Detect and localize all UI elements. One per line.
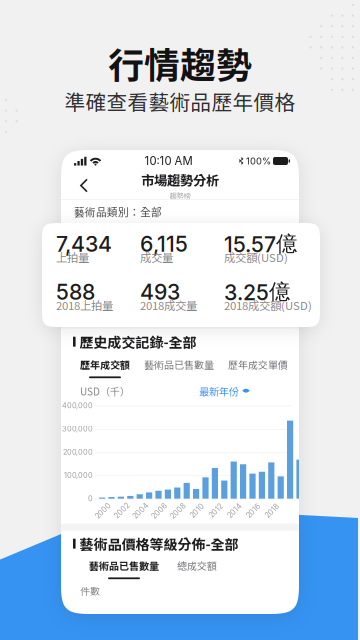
staticText: 上拍量 (56, 249, 89, 265)
staticText: 400,000 (62, 401, 93, 410)
staticText: 2018成交額(USD) (224, 297, 312, 313)
staticText: 歷史成交記錄-全部 (80, 332, 197, 352)
staticText: 藝術品已售數量 (89, 558, 159, 573)
staticText: 準確查看藝術品歷年價格 (64, 86, 295, 116)
staticText: 493 (140, 279, 180, 305)
staticText: 2018 (264, 506, 281, 515)
staticText: 2014 (226, 506, 243, 515)
button[interactable]: 最新年份 (199, 384, 251, 398)
button[interactable]: 歷年成交額 (80, 357, 130, 378)
staticText: 2008 (169, 506, 188, 515)
staticText: 2000 (93, 506, 112, 515)
staticText: 總成交額 (177, 558, 217, 573)
staticText: 藝術品已售數量 (144, 357, 214, 372)
staticText: 7,434 (56, 231, 112, 257)
button[interactable]: 歷年成交單價 (228, 357, 288, 378)
button[interactable]: Back (70, 171, 98, 199)
staticText: USD（千） (80, 384, 130, 398)
staticText: 最新年份 (199, 384, 239, 398)
staticText: 6,115 (140, 231, 188, 257)
staticText: 2018成交量 (140, 297, 197, 313)
staticText: 2018上拍量 (56, 297, 113, 313)
staticText: 2002 (113, 506, 131, 515)
staticText: 100% (246, 155, 271, 167)
button[interactable]: 藝術品已售數量 (89, 558, 159, 579)
staticText: 市場趨勢分析 (141, 170, 219, 189)
staticText: 歷年成交額 (80, 357, 130, 372)
button[interactable]: 藝術品已售數量 (144, 357, 214, 378)
staticText: 200,000 (63, 448, 93, 457)
staticText: 15.57億 (224, 231, 297, 257)
button[interactable]: 藝術品類別：全部 (61, 200, 299, 224)
staticText: 藝術品類別：全部 (74, 204, 162, 219)
staticText: 成交量 (140, 249, 173, 265)
staticText: 588 (56, 279, 95, 305)
staticText: 藝術品價格等級分佈-全部 (80, 534, 239, 554)
staticText: 2004 (131, 506, 150, 515)
staticText: 歷年成交單價 (228, 357, 288, 372)
staticText: 行情趨勢 (108, 37, 252, 89)
staticText: 2016 (245, 506, 262, 515)
staticText: 100,000 (64, 471, 93, 480)
staticText: 3.25億 (224, 279, 290, 305)
staticText: 0 (88, 494, 93, 503)
button[interactable]: 總成交額 (177, 558, 217, 579)
staticText: 2006 (150, 506, 169, 515)
staticText: 件數 (80, 583, 100, 598)
staticText: 2012 (208, 506, 224, 515)
staticText: 10:10 AM (144, 154, 192, 168)
staticText: 2010 (188, 506, 205, 515)
staticText: 趨勢榜 (169, 190, 190, 201)
staticText: 300,000 (62, 424, 93, 433)
staticText: 成交額(USD) (224, 249, 288, 265)
